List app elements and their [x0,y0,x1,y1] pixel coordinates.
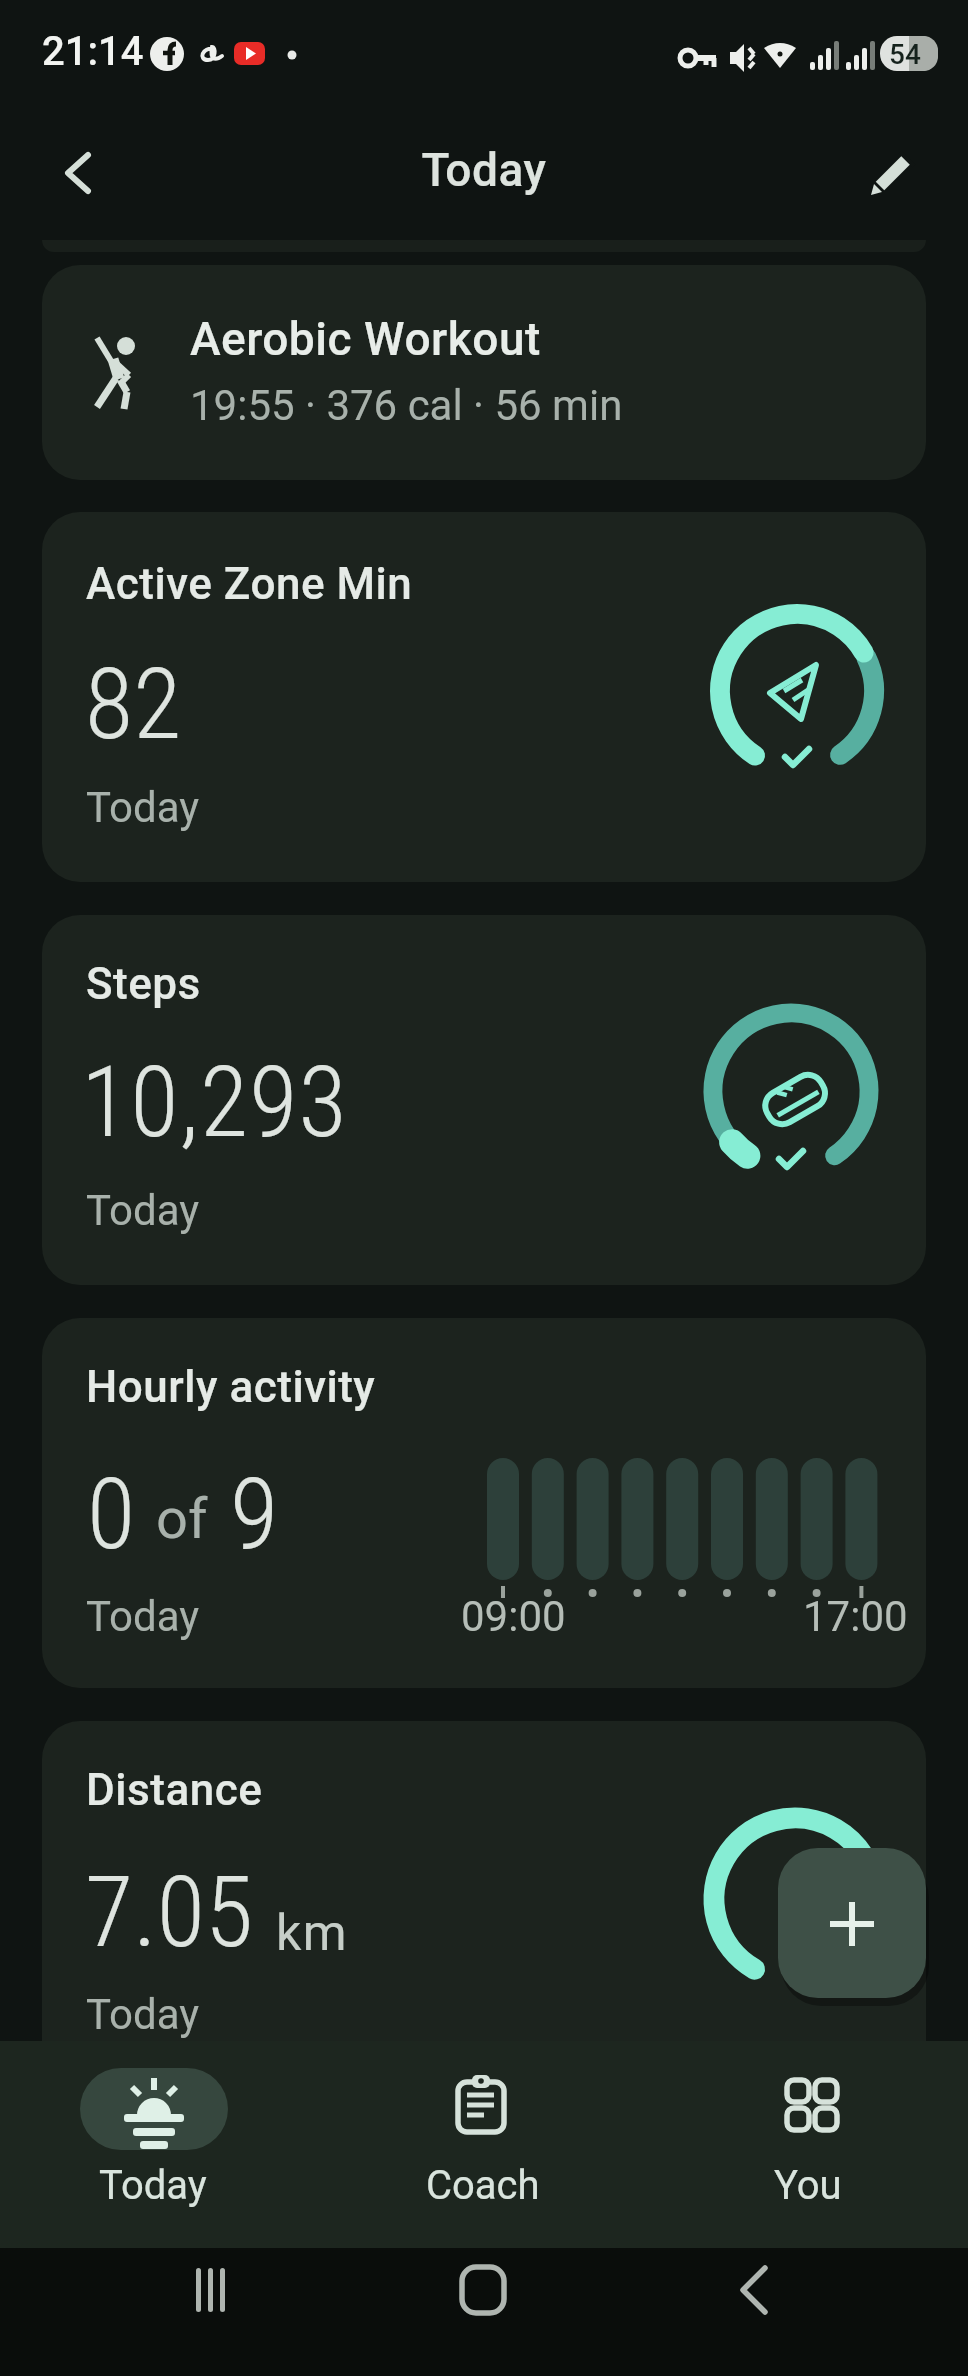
button[interactable]: You [646,2041,968,2248]
staticText: Distance [86,1764,263,1816]
button[interactable]: Coach [323,2041,645,2248]
staticText: of [156,1486,208,1552]
staticText: 09:00 [461,1592,566,1641]
staticText: 21:14 [42,28,144,75]
staticText: 19:55 · 376 cal · 56 min [190,381,623,430]
staticText: Today [86,1990,200,2039]
staticText: 0 [87,1456,136,1572]
staticText: Coach [426,2162,540,2209]
staticText: Today [86,783,200,832]
staticText: Active Zone Min [86,558,413,610]
staticText: 7.05 [85,1854,254,1970]
button[interactable] [42,265,926,480]
button[interactable] [862,142,924,204]
staticText: km [276,1904,349,1963]
button[interactable] [42,512,926,882]
staticText: 54 [889,38,921,71]
staticText: Today [0,143,968,197]
staticText: Hourly activity [86,1361,376,1413]
staticText: Today [86,1186,200,1235]
button[interactable] [151,2248,271,2376]
button[interactable] [695,2248,815,2376]
staticText: Today [99,2162,207,2209]
button[interactable] [423,2248,543,2376]
staticText: 82 [85,646,182,762]
button[interactable] [778,1848,926,1998]
staticText: 10,293 [81,1044,348,1160]
button[interactable]: Today [0,2041,322,2248]
staticText: 17:00 [803,1592,908,1641]
button[interactable] [42,915,926,1285]
staticText: Steps [86,958,201,1010]
staticText: You [774,2162,842,2209]
staticText: 9 [230,1456,279,1572]
button[interactable] [42,1721,926,2091]
staticText: Aerobic Workout [190,312,541,366]
staticText: Today [86,1592,200,1641]
button[interactable] [46,142,108,204]
button[interactable] [42,1318,926,1688]
